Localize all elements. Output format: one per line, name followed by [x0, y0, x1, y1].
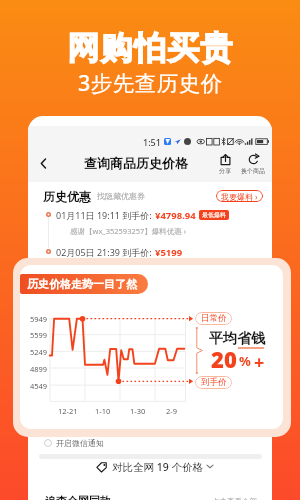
staticText: ¥4798.94: [155, 209, 196, 220]
staticText: 3步先查历史价: [78, 68, 223, 97]
staticText: 4899: [30, 364, 48, 374]
staticText: 分享: [219, 167, 231, 175]
staticText: 1-30: [130, 406, 146, 416]
button[interactable]: 分享: [218, 153, 232, 176]
staticText: 感谢【wx_352593257】爆料优惠 ›: [70, 226, 187, 236]
staticText: 5599: [30, 330, 48, 340]
staticText: 历史优惠: [43, 189, 91, 203]
staticText: +: [254, 350, 265, 375]
staticText: 最低爆料: [202, 211, 226, 219]
staticText: 5949: [30, 314, 48, 324]
staticText: 历史价格走势一目了然: [27, 277, 137, 291]
staticText: %: [239, 352, 251, 370]
staticText: 追查全网同款: [45, 494, 111, 500]
staticText: 20: [211, 344, 237, 374]
staticText: 1:51: [143, 136, 161, 148]
staticText: 2-9: [166, 406, 177, 416]
staticText: 日常价: [201, 313, 227, 324]
staticText: 02月05日 21:39 到手价:: [56, 246, 155, 257]
staticText: 平均省钱: [209, 330, 265, 348]
staticText: 对比全网 19 个价格: [112, 460, 203, 472]
button[interactable]: 换个商品: [240, 153, 266, 176]
button[interactable]: 开启微信通知: [44, 437, 104, 448]
staticText: 开启微信通知: [56, 438, 104, 448]
staticText: 12-21: [58, 406, 78, 416]
staticText: 网购怕买贵: [67, 28, 233, 68]
button[interactable]: 对比全网 19 个价格: [96, 460, 214, 472]
staticText: 到手价: [201, 377, 227, 388]
staticText: ¥5199: [155, 246, 183, 257]
staticText: 换个商品: [241, 167, 265, 175]
staticText: 5249: [30, 347, 48, 357]
button[interactable]: 我要爆料 ›: [216, 190, 263, 202]
staticText: 查询商品历史价格: [84, 155, 188, 171]
staticText: 4549: [30, 381, 48, 391]
button[interactable]: Back: [33, 153, 53, 173]
staticText: 01月11日 19:11 到手价:: [56, 209, 155, 220]
staticText: 我要爆料 ›: [221, 191, 258, 202]
staticText: 1-10: [95, 406, 111, 416]
staticText: 找隐藏优惠券: [97, 191, 145, 201]
staticText: 点击查看全部 ›: [212, 496, 262, 500]
